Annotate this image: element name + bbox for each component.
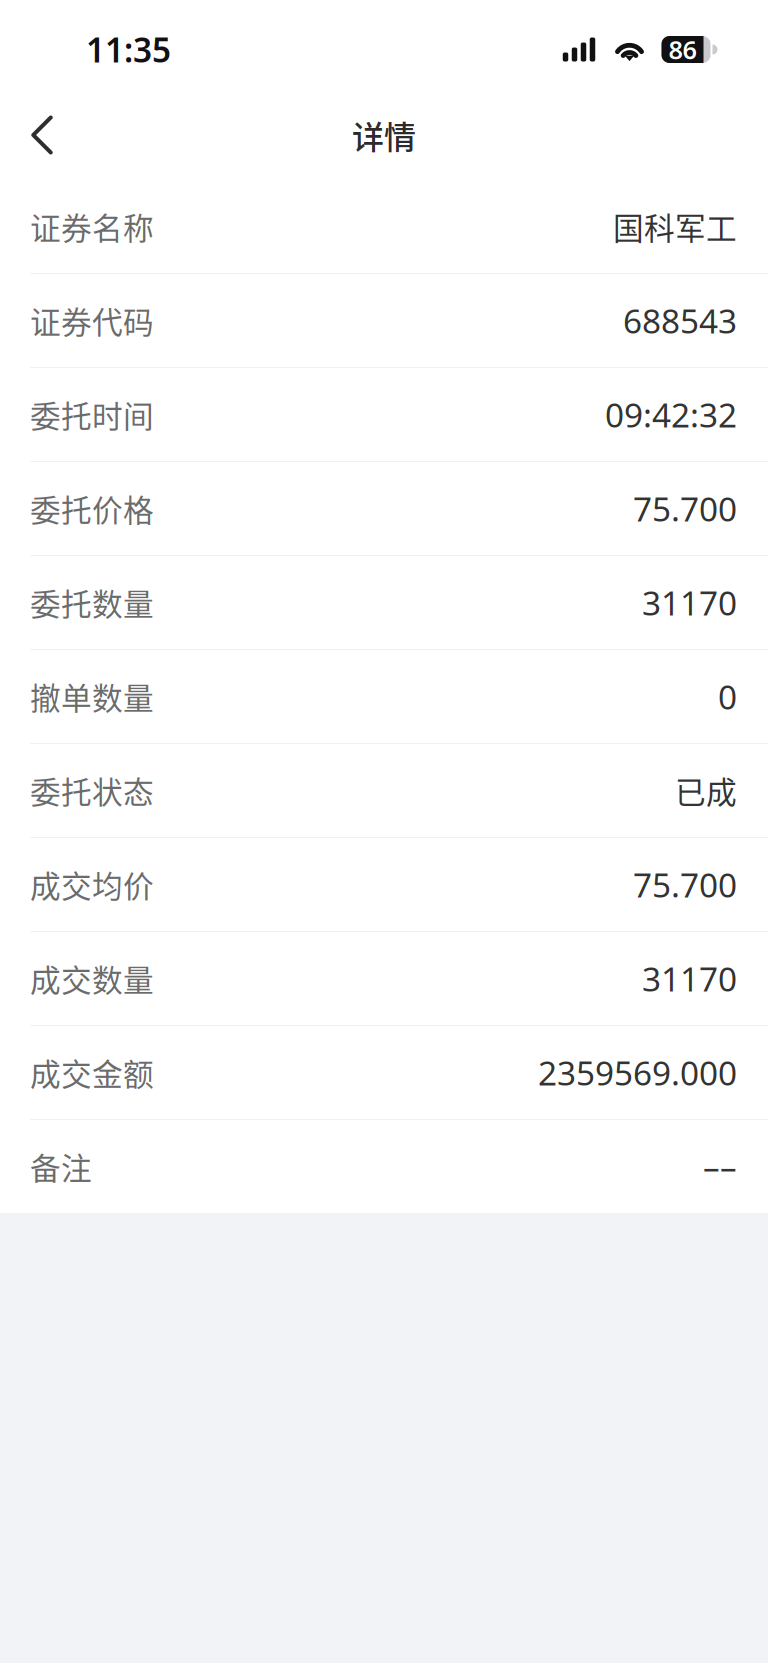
staticText: 成交数量 (30, 956, 154, 1001)
staticText: 撤单数量 (30, 674, 154, 719)
staticText: 2359569.000 (538, 1050, 737, 1095)
staticText: 75.700 (633, 486, 737, 531)
staticText: 委托数量 (30, 580, 154, 625)
staticText: 31170 (642, 956, 737, 1001)
staticText: 75.700 (633, 862, 737, 907)
staticText: 成交金额 (30, 1050, 154, 1095)
staticText: 委托时间 (30, 392, 154, 437)
staticText: 证券代码 (30, 298, 154, 343)
staticText: 86 (668, 33, 696, 66)
staticText: 证券名称 (30, 204, 154, 249)
staticText: 委托价格 (30, 486, 154, 531)
staticText: 备注 (30, 1144, 92, 1189)
staticText: 31170 (642, 580, 737, 625)
staticText: 已成 (675, 768, 737, 813)
staticText: 成交均价 (30, 862, 154, 907)
staticText: 详情 (352, 112, 416, 158)
button[interactable]: Back (8, 99, 76, 171)
staticText: 688543 (623, 298, 737, 343)
staticText: 09:42:32 (605, 392, 737, 437)
staticText: 0 (718, 674, 737, 719)
staticText: 委托状态 (30, 768, 154, 813)
staticText: 国科军工 (613, 204, 737, 249)
staticText: 11:35 (86, 27, 171, 72)
staticText: –– (703, 1144, 737, 1189)
